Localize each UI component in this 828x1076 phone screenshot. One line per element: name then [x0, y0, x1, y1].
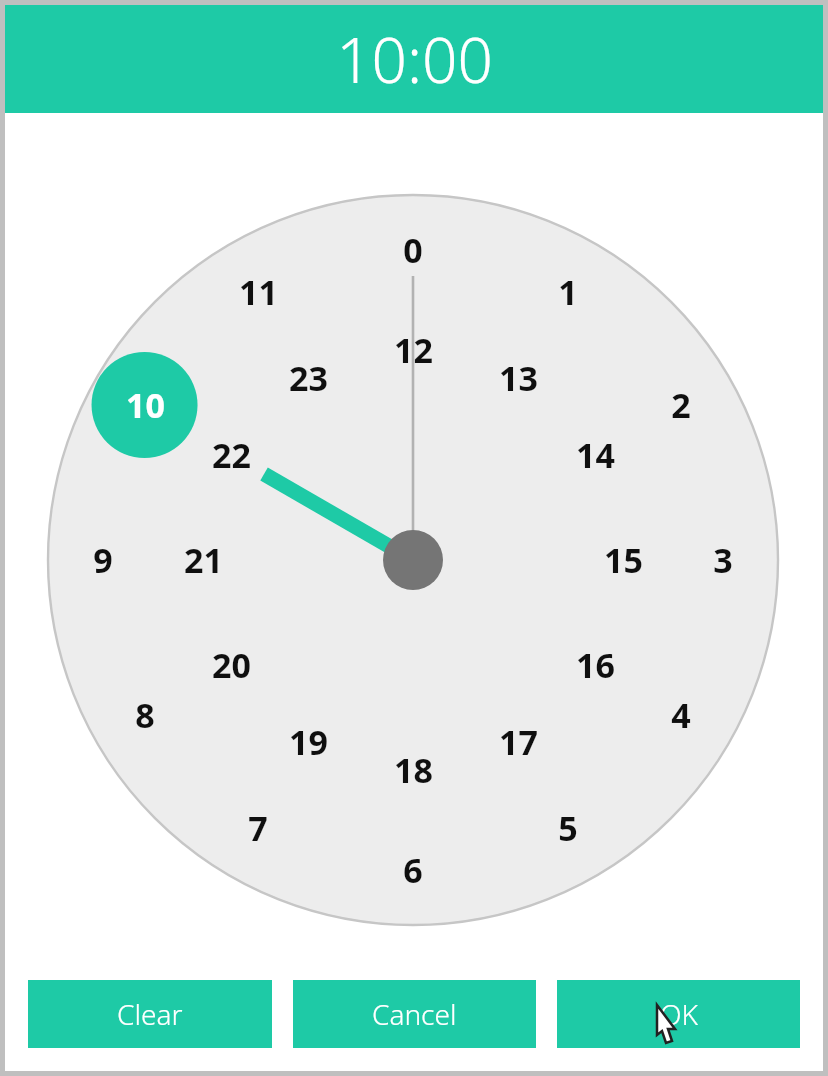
button[interactable]: 5 [552, 801, 584, 855]
button[interactable]: 16 [567, 638, 623, 692]
staticText: Clear [117, 995, 183, 1033]
staticText: 18 [394, 747, 433, 793]
button[interactable]: 6 [397, 843, 429, 897]
button[interactable]: 10 [117, 378, 173, 432]
button[interactable]: 14 [567, 428, 623, 482]
staticText: 11 [239, 269, 278, 315]
button[interactable]: 18 [385, 743, 441, 797]
button[interactable]: Clear [28, 980, 272, 1048]
staticText: 19 [289, 719, 328, 765]
staticText: OK [660, 995, 698, 1033]
staticText: 23 [289, 355, 328, 401]
staticText: 20 [212, 642, 251, 688]
staticText: 6 [403, 847, 423, 893]
staticText: 10:00 [336, 17, 493, 101]
staticText: 3 [713, 537, 733, 583]
staticText: 0 [403, 227, 423, 273]
staticText: 14 [576, 432, 615, 478]
button[interactable]: 4 [665, 688, 697, 742]
staticText: 8 [135, 692, 155, 738]
button[interactable]: Cancel [293, 980, 536, 1048]
staticText: 10 [126, 382, 165, 428]
button[interactable]: 11 [230, 265, 286, 319]
button[interactable]: 10:00 [5, 5, 823, 113]
staticText: 13 [499, 355, 538, 401]
staticText: 4 [671, 692, 691, 738]
staticText: Cancel [372, 995, 457, 1033]
button[interactable]: 13 [490, 351, 546, 405]
button[interactable]: 9 [87, 533, 119, 587]
button[interactable]: 3 [707, 533, 739, 587]
button[interactable]: OK [557, 980, 800, 1048]
staticText: 9 [93, 537, 113, 583]
button[interactable]: 12 [385, 323, 441, 377]
button[interactable]: 8 [129, 688, 161, 742]
staticText: 12 [394, 327, 433, 373]
staticText: 15 [604, 537, 643, 583]
staticText: 1 [558, 269, 578, 315]
button[interactable]: 1 [552, 265, 584, 319]
button[interactable]: 20 [203, 638, 259, 692]
button[interactable]: 2 [665, 378, 697, 432]
button[interactable]: 17 [490, 715, 546, 769]
button[interactable]: 0 [397, 223, 429, 277]
button[interactable]: 7 [242, 801, 274, 855]
staticText: 5 [558, 805, 578, 851]
button[interactable]: 21 [175, 533, 231, 587]
staticText: 21 [184, 537, 223, 583]
button[interactable]: 22 [203, 428, 259, 482]
button[interactable]: 23 [280, 351, 336, 405]
staticText: 2 [671, 382, 691, 428]
button[interactable]: 15 [595, 533, 651, 587]
staticText: 7 [248, 805, 268, 851]
button[interactable]: 19 [280, 715, 336, 769]
staticText: 22 [212, 432, 251, 478]
staticText: 16 [576, 642, 615, 688]
staticText: 17 [499, 719, 538, 765]
